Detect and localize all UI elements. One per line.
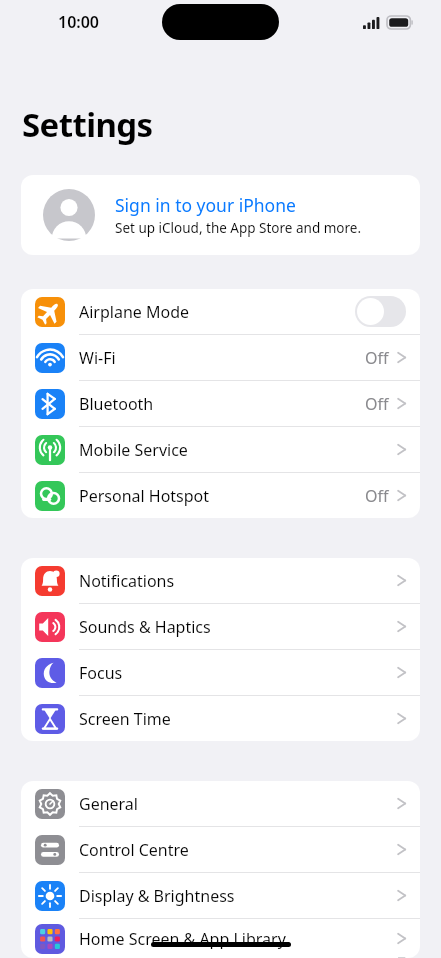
button[interactable]: Focus [21, 650, 420, 695]
staticText: Off [365, 347, 389, 369]
staticText: Set up iCloud, the App Store and more. [115, 219, 362, 237]
staticText: Off [365, 485, 389, 507]
staticText: Mobile Service [79, 439, 188, 461]
staticText: General [79, 793, 138, 815]
button[interactable]: Bluetooth [21, 381, 420, 426]
staticText: Home Screen & App Library [79, 928, 286, 950]
button[interactable]: Display & Brightness [21, 873, 420, 918]
button[interactable]: Airplane Mode [21, 289, 420, 334]
button[interactable]: Home Screen & App Library [21, 919, 420, 958]
button[interactable]: Mobile Service [21, 427, 420, 472]
staticText: Sign in to your iPhone [115, 193, 296, 217]
button[interactable]: Control Centre [21, 827, 420, 872]
button[interactable]: Notifications [21, 558, 420, 603]
staticText: Notifications [79, 570, 175, 592]
staticText: Screen Time [79, 708, 171, 730]
staticText: Wi-Fi [79, 347, 116, 369]
staticText: Control Centre [79, 839, 189, 861]
staticText: 10:00 [58, 11, 100, 33]
staticText: Airplane Mode [79, 301, 190, 323]
staticText: Settings [22, 102, 153, 147]
staticText: Focus [79, 662, 123, 684]
button[interactable]: Wi-Fi [21, 335, 420, 380]
button[interactable]: Airplane Mode toggle, off [355, 296, 406, 327]
button[interactable]: Screen Time [21, 696, 420, 741]
staticText: Display & Brightness [79, 885, 235, 907]
button[interactable]: General [21, 781, 420, 826]
staticText: Off [365, 393, 389, 415]
button[interactable]: Sign in to your iPhone [21, 175, 420, 255]
button[interactable]: Personal Hotspot [21, 473, 420, 518]
staticText: Bluetooth [79, 393, 154, 415]
staticText: Sounds & Haptics [79, 616, 211, 638]
button[interactable]: Sounds & Haptics [21, 604, 420, 649]
staticText: Personal Hotspot [79, 485, 210, 507]
